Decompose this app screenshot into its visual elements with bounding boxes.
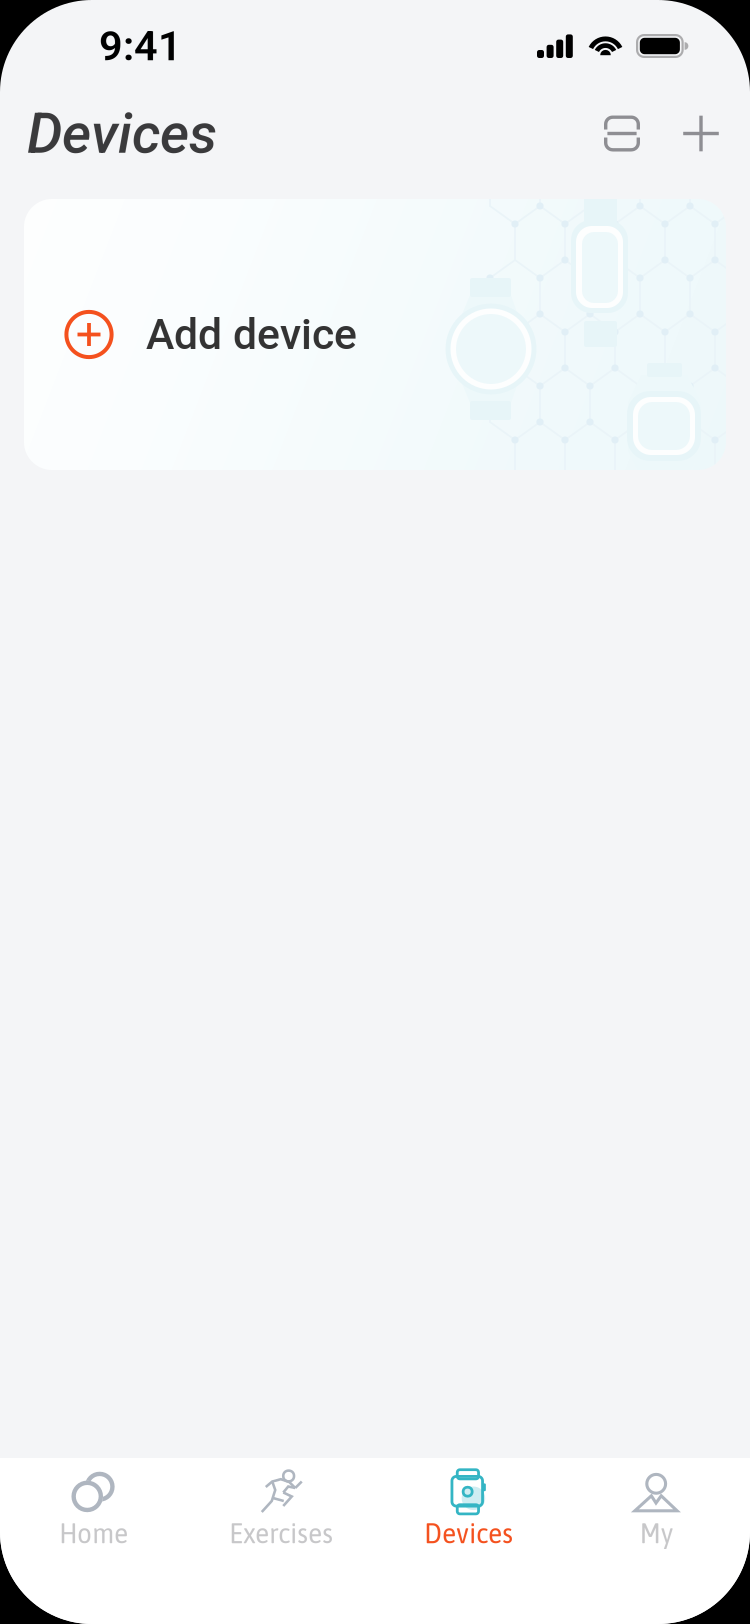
staticText: Devices	[27, 101, 217, 166]
button[interactable]: Devices	[375, 1458, 562, 1624]
staticText: 9:41	[99, 22, 182, 70]
staticText: Home	[59, 1517, 128, 1549]
staticText: My	[640, 1517, 673, 1549]
staticText: Add device	[146, 309, 357, 359]
staticText: Devices	[424, 1517, 513, 1549]
button[interactable]: Home	[0, 1458, 187, 1624]
button[interactable]: Exercises	[187, 1458, 375, 1624]
button[interactable]: My	[562, 1458, 750, 1624]
staticText: Exercises	[229, 1517, 333, 1549]
button[interactable]: Layout	[604, 115, 640, 151]
button[interactable]: Add device	[682, 114, 720, 152]
button[interactable]: Add device	[24, 199, 726, 470]
